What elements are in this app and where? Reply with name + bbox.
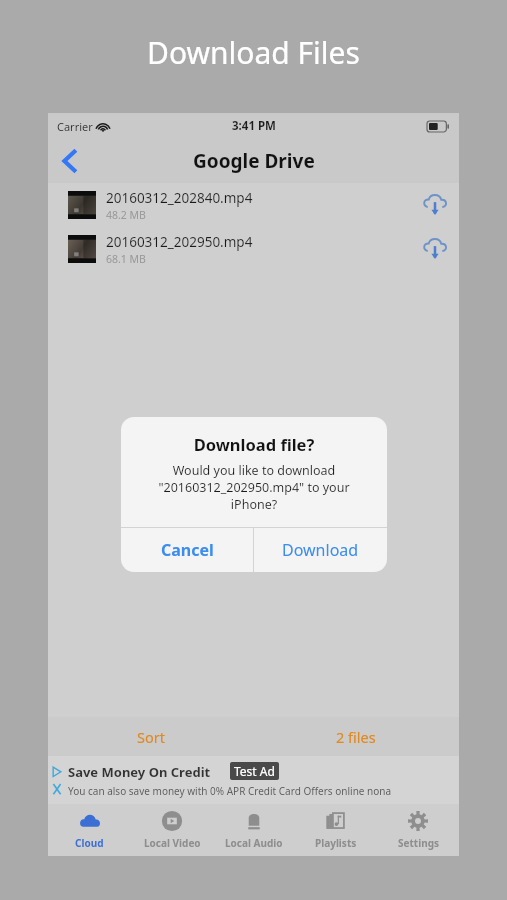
button[interactable]: Download [411,227,459,271]
staticText: 20160312_202950.mp4 [106,233,253,251]
staticText: Test Ad [234,763,275,779]
staticText: 3:41 PM [232,118,276,134]
staticText: Download [282,539,359,561]
staticText: Cancel [161,539,214,561]
button[interactable]: Download [411,183,459,227]
staticText: 20160312_202840.mp4 [106,189,253,207]
button[interactable]: 20160312_202950.mp4 [48,227,459,271]
button[interactable]: Cancel [121,528,253,572]
staticText: Local Audio [225,836,283,850]
staticText: 2 files [336,727,376,747]
button[interactable]: Playlists [295,804,377,856]
staticText: Local Video [144,836,201,850]
staticText: Save Money On Credit [68,763,211,781]
staticText: Google Drive [193,148,315,174]
staticText: Cloud [75,836,104,850]
button[interactable]: Sort [48,717,253,756]
staticText: Carrier [57,119,93,134]
staticText: Would you like to download "20160312_202… [135,462,373,513]
staticText: Sort [137,727,165,747]
button[interactable]: Settings [377,804,459,856]
staticText: 48.2 MB [106,208,146,222]
button[interactable]: Cloud [48,804,131,856]
button[interactable]: Local Audio [213,804,295,856]
staticText: Settings [398,836,439,850]
button[interactable]: 20160312_202840.mp4 [48,183,459,227]
staticText: Download Files [147,32,360,73]
button[interactable]: Local Video [131,804,213,856]
staticText: You can also save money with 0% APR Cred… [68,784,392,798]
staticText: 68.1 MB [106,252,146,266]
button[interactable]: Back [48,139,92,183]
button[interactable]: Save Money On Credit [48,756,459,804]
staticText: Download file? [135,433,373,455]
button[interactable]: Download [254,528,387,572]
staticText: Playlists [315,836,357,850]
